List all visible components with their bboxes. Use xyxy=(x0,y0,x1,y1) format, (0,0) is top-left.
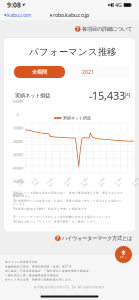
staticText: 全期間 xyxy=(32,69,47,75)
staticText: ※表示している情報は過去の実績であり、将来の運用成果を示唆・保証するものではあり… xyxy=(13,191,123,198)
staticText: ※本画面の数値は手数料・税金等を考慮した概算値です。 xyxy=(13,207,90,210)
staticText: 一般社団法人第二種金融商品取引業協会 xyxy=(5,274,59,277)
staticText: -15,433 xyxy=(89,88,125,103)
staticText: 実績ネット損益 xyxy=(15,92,50,99)
staticText: 9:08 xyxy=(7,1,21,9)
staticText: 各項目の詳細について xyxy=(82,26,132,32)
staticText: kabu.com xyxy=(7,11,31,19)
staticText: 21/07/01 xyxy=(115,178,124,186)
staticText: ※ハイウォーターマーク方式により成功報酬が発生する場合がございます。 xyxy=(13,215,114,218)
staticText: 10000 xyxy=(12,99,22,104)
staticText: 4G xyxy=(115,1,122,9)
button[interactable]: kabu.com xyxy=(4,11,31,19)
staticText: 21/06/01 xyxy=(98,178,107,186)
staticText: 21/05/06 xyxy=(81,178,90,186)
staticText: 21/03/01 xyxy=(47,178,56,186)
staticText: 0 xyxy=(16,112,18,117)
staticText: auカブコム証券株式会社 xyxy=(5,260,38,264)
button[interactable]: ? xyxy=(55,235,132,242)
staticText: robo.kabu.co.jp xyxy=(53,11,89,19)
button[interactable]: 2021 xyxy=(65,66,111,78)
staticText: 2021 xyxy=(82,68,94,76)
staticText: 21/01/04 xyxy=(17,178,24,186)
staticText: ハイウォーターマーク方式とは xyxy=(62,235,132,242)
staticText: 金融商品取引業者 関東財務局長（金商）第61号 xyxy=(5,265,72,268)
staticText: ? xyxy=(56,235,59,242)
staticText: 加入協会／日本証券業協会 一般社団法人金融先物取引業協会 xyxy=(5,269,89,273)
staticText: 21/02/01 xyxy=(32,178,39,186)
staticText: -10000 xyxy=(12,125,23,131)
staticText: 21/08/02 xyxy=(132,178,139,186)
staticText: -60000 xyxy=(12,192,23,197)
staticText: ※計測期間中に入出金等があった場合、実際の損益と異なって表示される場合がございま… xyxy=(13,199,123,206)
staticText: ? xyxy=(76,25,79,33)
staticText: -20000 xyxy=(12,139,23,144)
button[interactable]: Back to top xyxy=(115,246,132,263)
staticText: ※詳細は当社ウェブサイトの「各種手数料」をご確認ください。 xyxy=(13,220,99,223)
staticText: TOPへ xyxy=(119,255,127,259)
staticText: au Kabucom Securities Co., Ltd. All righ… xyxy=(34,285,105,289)
button[interactable]: 全期間 xyxy=(14,66,65,78)
staticText: -50000 xyxy=(12,179,23,184)
staticText: -40000 xyxy=(12,165,23,171)
staticText: 実績ネット損益 xyxy=(63,115,91,120)
button[interactable]: ? xyxy=(75,25,132,33)
button[interactable]: robo.kabu.co.jp xyxy=(50,11,89,19)
staticText: -30000 xyxy=(12,152,23,157)
staticText: パフォーマンス推移 xyxy=(29,46,116,58)
staticText: 円 xyxy=(125,92,130,99)
staticText: 本サイト内の文章・画像等の無断転載を禁じます。 xyxy=(5,278,74,281)
staticText: 21/04/01 xyxy=(64,178,73,186)
